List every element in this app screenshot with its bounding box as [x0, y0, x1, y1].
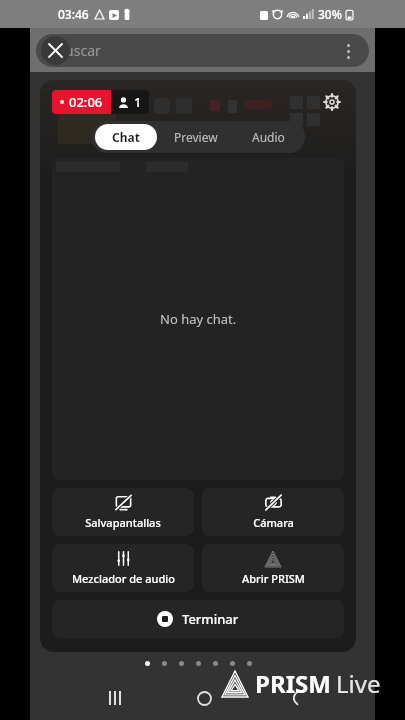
button[interactable]: More options — [335, 38, 361, 64]
button[interactable]: Close — [41, 36, 70, 65]
button[interactable]: Home — [189, 683, 219, 713]
staticText: Audio — [252, 129, 285, 145]
button[interactable]: Preview — [157, 124, 235, 150]
staticText: 1 — [134, 93, 142, 111]
button[interactable]: Buscar — [36, 34, 369, 67]
button[interactable]: Chat — [95, 124, 157, 150]
staticText: Live — [336, 667, 381, 700]
staticText: 30% — [318, 6, 342, 22]
staticText: Terminar — [182, 610, 239, 628]
button[interactable]: Recents — [100, 683, 130, 713]
staticText: Salvapantallas — [85, 515, 161, 530]
button[interactable]: Mezclador de audio — [52, 544, 194, 592]
button[interactable]: Abrir PRISM — [202, 544, 344, 592]
button[interactable]: Audio — [235, 124, 302, 150]
staticText: Chat — [112, 129, 140, 145]
staticText: PRISM — [255, 667, 331, 700]
staticText: No hay chat. — [160, 310, 237, 328]
staticText: Cámara — [253, 515, 294, 530]
button[interactable]: Back — [279, 683, 309, 713]
button[interactable]: Settings — [318, 88, 346, 116]
staticText: Mezclador de audio — [72, 571, 175, 586]
button[interactable]: Terminar — [52, 600, 344, 638]
button[interactable]: Cámara — [202, 488, 344, 536]
staticText: Abrir PRISM — [242, 571, 305, 586]
staticText: 02:06 — [69, 93, 103, 111]
staticText: Preview — [174, 129, 218, 145]
button[interactable]: Salvapantallas — [52, 488, 194, 536]
staticText: Buscar — [56, 41, 101, 60]
staticText: 03:46 — [58, 6, 89, 22]
